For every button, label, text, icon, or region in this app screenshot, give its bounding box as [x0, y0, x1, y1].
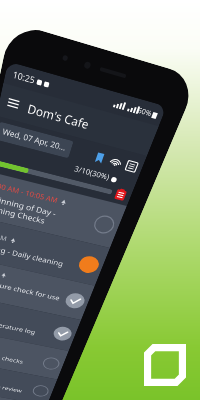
- staticText: 60%: [136, 105, 153, 119]
- button[interactable]: Logo: [144, 344, 186, 386]
- button[interactable]: Wifi: [109, 156, 122, 168]
- staticText: Opening - Daily cleaning: [0, 238, 65, 268]
- button[interactable]: 11:00 AM: [0, 216, 110, 286]
- button[interactable]: 10:00 AM - 10:05 AM: [0, 170, 127, 248]
- staticText: Beginning of Day - Opening Checks: [0, 190, 91, 235]
- staticText: 3/10(30%): [73, 164, 111, 183]
- button[interactable]: Menu: [3, 92, 24, 115]
- staticText: Temperature check for use with: [0, 273, 63, 309]
- button[interactable]: 12:00 PM: [0, 294, 81, 351]
- staticText: Wed, 07 Apr, 20...: [1, 126, 68, 154]
- button[interactable]: 11:30 AM: [0, 257, 95, 320]
- button[interactable]: 2:00 PM: [0, 358, 57, 400]
- staticText: Afternoon prep checks: [0, 344, 25, 365]
- staticText: 10:00 AM - 10:05 AM: [0, 179, 59, 206]
- button[interactable]: Tag: [93, 152, 106, 164]
- button[interactable]: Notes: [125, 160, 138, 172]
- button[interactable]: 3:00 PM: [0, 386, 47, 400]
- button[interactable]: Wed, 07 Apr, 20...: [0, 122, 74, 158]
- staticText: Fridge temperature log: [0, 312, 37, 336]
- staticText: 10:25: [11, 69, 36, 87]
- staticText: 11:00 AM: [0, 228, 8, 244]
- staticText: Cleaning schedule review: [0, 373, 23, 394]
- button[interactable]: 1:00 PM: [0, 327, 69, 379]
- staticText: Dom's Cafe: [26, 100, 91, 132]
- button[interactable]: Report: [114, 188, 127, 201]
